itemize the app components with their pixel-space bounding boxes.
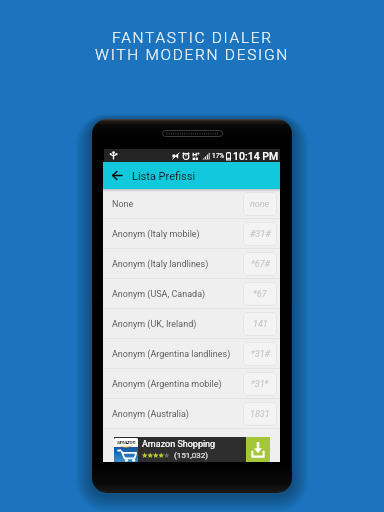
staticText: *67# <box>251 259 270 270</box>
staticText: Anonym (Italy mobile) <box>112 229 243 240</box>
staticText: 10:14 PM <box>233 150 279 162</box>
button[interactable]: Back <box>103 162 131 189</box>
staticText: Anonym (Argentina landlines) <box>112 349 243 360</box>
button[interactable]: Anonym (Argentina mobile) <box>103 369 280 398</box>
staticText: amazon <box>117 439 136 445</box>
button[interactable]: Anonym (UK, Ireland) <box>103 309 280 338</box>
staticText: #31# <box>250 229 271 240</box>
button[interactable]: Anonym (Australia) <box>103 399 280 428</box>
button[interactable]: Anonym (USA, Canada) <box>103 279 280 308</box>
staticText: Anonym (UK, Ireland) <box>112 319 243 330</box>
button[interactable]: Anonym (Italy mobile) <box>103 219 280 248</box>
staticText: Lista Prefissi <box>132 170 196 183</box>
staticText: *31* <box>251 379 269 390</box>
staticText: Amazon Shopping <box>142 439 216 450</box>
staticText: *67 <box>253 289 267 300</box>
button[interactable]: Anonym (Italy landlines) <box>103 249 280 278</box>
staticText: Anonym (USA, Canada) <box>112 289 243 300</box>
staticText: none <box>250 199 270 210</box>
staticText: *31# <box>251 349 270 360</box>
staticText: 141 <box>253 319 268 330</box>
staticText: FANTASTIC DIALER <box>112 29 273 47</box>
staticText: Anonym (Italy landlines) <box>112 259 243 270</box>
button[interactable]: amazon <box>114 437 270 462</box>
staticText: Anonym (Argentina mobile) <box>112 379 243 390</box>
button[interactable]: None <box>103 189 280 218</box>
staticText: WITH MODERN DESIGN <box>95 46 289 64</box>
button[interactable]: Install <box>246 437 270 462</box>
staticText: Anonym (Australia) <box>112 409 243 420</box>
staticText: 17% <box>212 152 225 160</box>
staticText: None <box>112 199 243 210</box>
button[interactable]: Anonym (Argentina landlines) <box>103 339 280 368</box>
staticText: (151,032) <box>174 451 209 460</box>
staticText: 1831 <box>250 409 270 420</box>
